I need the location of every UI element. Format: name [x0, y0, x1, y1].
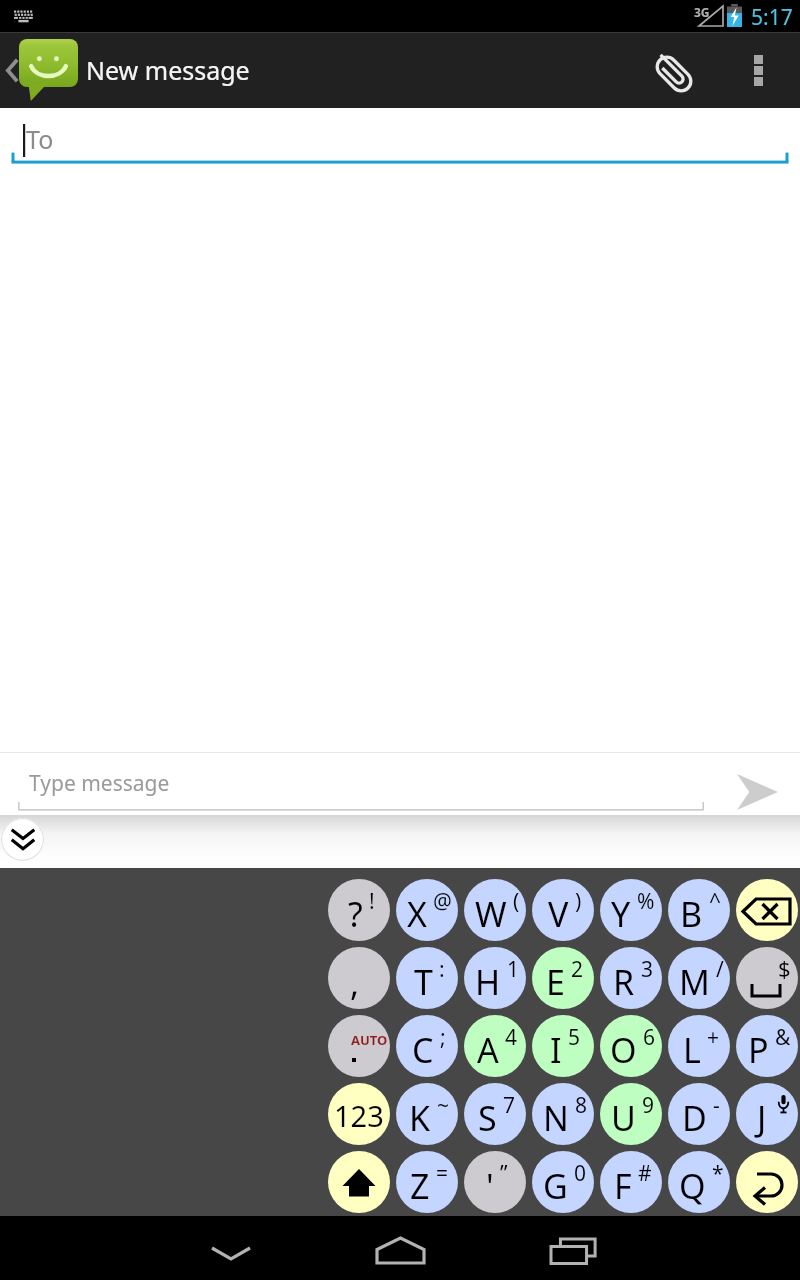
button[interactable]: Z — [396, 1151, 458, 1213]
button[interactable]: ' — [464, 1151, 526, 1213]
button[interactable]: I — [532, 1015, 594, 1077]
button[interactable]: O — [600, 1015, 662, 1077]
button[interactable]: R — [600, 947, 662, 1009]
button[interactable]: E — [532, 947, 594, 1009]
staticText: ~ — [437, 1091, 450, 1120]
staticText: 1 — [507, 955, 520, 984]
staticText: & — [775, 1023, 791, 1052]
button[interactable]: Home — [320, 1216, 480, 1280]
staticText: I — [550, 1027, 562, 1073]
staticText: ) — [575, 887, 582, 916]
button[interactable]: Type message — [0, 752, 700, 815]
button[interactable]: D — [668, 1083, 730, 1145]
button[interactable]: V — [532, 879, 594, 941]
button[interactable]: B — [668, 879, 730, 941]
staticText: 3 — [641, 955, 654, 984]
staticText: U — [611, 1095, 636, 1141]
button[interactable]: G — [532, 1151, 594, 1213]
button[interactable]: Recent apps — [491, 1216, 651, 1280]
staticText: ? — [348, 891, 363, 937]
staticText: 5 — [568, 1023, 581, 1052]
staticText: $ — [778, 953, 791, 983]
staticText: 6 — [643, 1023, 656, 1052]
staticText: , — [350, 960, 360, 1006]
staticText: O — [610, 1027, 637, 1073]
staticText: G — [543, 1163, 568, 1209]
staticText: W — [475, 891, 507, 937]
staticText: E — [546, 959, 565, 1005]
staticText: D — [682, 1095, 707, 1141]
staticText: M — [679, 959, 710, 1005]
staticText: ; — [440, 1023, 446, 1052]
staticText: - — [713, 1091, 720, 1120]
staticText: 5:17 — [751, 3, 793, 32]
staticText: V — [548, 891, 569, 937]
button[interactable]: U — [600, 1083, 662, 1145]
button[interactable]: C — [396, 1015, 458, 1077]
button[interactable]: , — [328, 947, 390, 1009]
staticText: = — [436, 1159, 449, 1188]
button[interactable]: M — [668, 947, 730, 1009]
staticText: Y — [611, 891, 631, 937]
button[interactable]: Back — [151, 1216, 311, 1280]
other: Backspace — [743, 881, 798, 941]
button[interactable]: Backspace — [736, 879, 798, 941]
staticText: ! — [369, 887, 375, 916]
staticText: H — [475, 959, 501, 1005]
staticText: A — [477, 1027, 499, 1073]
staticText: 2 — [571, 955, 584, 984]
button[interactable]: Space — [736, 947, 798, 1009]
staticText: T — [414, 959, 433, 1005]
staticText: New message — [86, 53, 250, 87]
button[interactable]: T — [396, 947, 458, 1009]
button[interactable]: ? — [328, 879, 390, 941]
staticText: 3G — [694, 4, 710, 20]
button[interactable]: More options — [716, 32, 800, 108]
button[interactable]: 123 — [328, 1083, 390, 1145]
button[interactable]: To — [0, 108, 800, 168]
staticText: ^ — [709, 887, 722, 916]
button[interactable]: W — [464, 879, 526, 941]
staticText: C — [412, 1027, 434, 1073]
staticText: B — [680, 891, 703, 937]
button[interactable]: Shift — [328, 1151, 390, 1213]
staticText: + — [707, 1023, 720, 1052]
staticText: F — [614, 1163, 632, 1209]
staticText: ' — [486, 1163, 494, 1209]
staticText: 123 — [334, 1096, 384, 1135]
staticText: Q — [679, 1163, 706, 1209]
staticText: : — [439, 955, 445, 984]
button[interactable]: Y — [600, 879, 662, 941]
staticText: P — [748, 1027, 769, 1073]
button[interactable]: X — [396, 879, 458, 941]
staticText: # — [638, 1159, 652, 1188]
staticText: 4 — [505, 1023, 518, 1052]
staticText: S — [478, 1095, 497, 1141]
staticText: ( — [513, 887, 520, 916]
staticText: J — [757, 1095, 767, 1141]
button[interactable]: A — [464, 1015, 526, 1077]
button[interactable]: J — [736, 1083, 798, 1145]
other: Space — [736, 947, 798, 1009]
staticText: To — [26, 122, 54, 156]
button[interactable]: Attach — [640, 32, 716, 108]
button[interactable]: H — [464, 947, 526, 1009]
button[interactable]: P — [736, 1015, 798, 1077]
button[interactable]: Navigate up — [0, 32, 260, 108]
button[interactable]: S — [464, 1083, 526, 1145]
staticText: L — [683, 1027, 701, 1073]
button[interactable]: L — [668, 1015, 730, 1077]
staticText: * — [712, 1159, 724, 1188]
staticText: @ — [433, 887, 452, 916]
button[interactable]: F — [600, 1151, 662, 1213]
button[interactable]: AUTO — [328, 1015, 390, 1077]
button[interactable]: Send — [700, 752, 800, 815]
button[interactable]: Q — [668, 1151, 730, 1213]
staticText: 8 — [575, 1091, 588, 1120]
button[interactable]: K — [396, 1083, 458, 1145]
staticText: Type message — [29, 769, 170, 798]
staticText: 7 — [503, 1091, 516, 1120]
button[interactable]: Collapse keyboard — [1, 818, 44, 861]
button[interactable]: Enter — [736, 1151, 798, 1213]
button[interactable]: N — [532, 1083, 594, 1145]
